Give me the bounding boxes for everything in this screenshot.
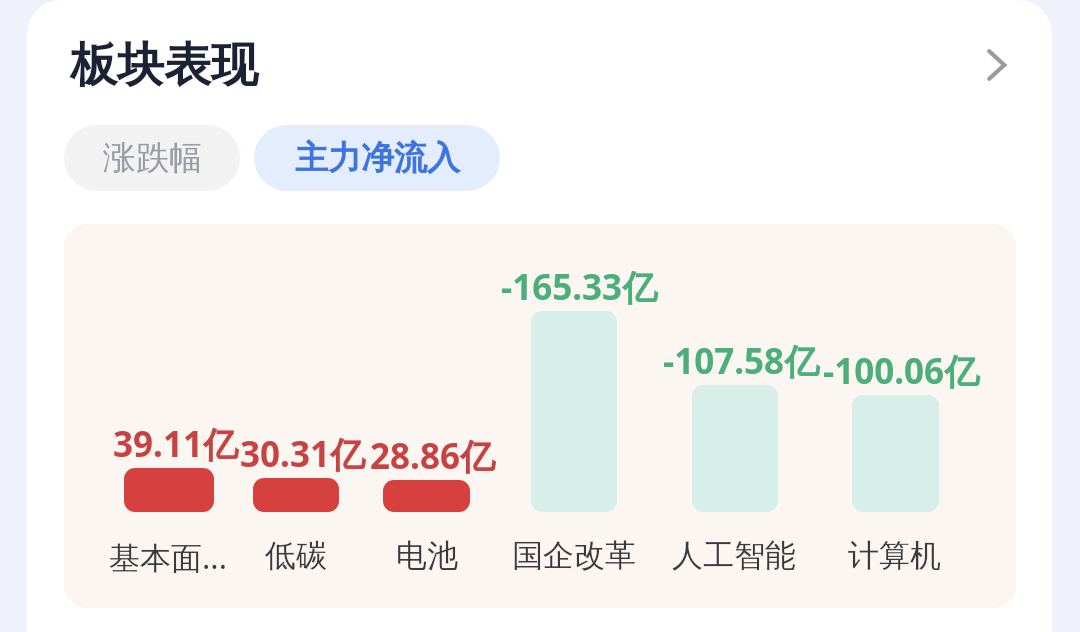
button[interactable]: 主力净流入 [254,125,500,191]
staticText: 人工智能 [672,536,796,575]
staticText: 基本面... [109,536,227,578]
button[interactable]: 涨跌幅 [64,125,240,191]
button[interactable] [253,478,339,512]
staticText: 计算机 [848,536,941,575]
staticText: 涨跌幅 [103,137,202,179]
staticText: -165.33亿 [501,263,658,311]
staticText: 低碳 [265,536,327,575]
staticText: 30.31亿 [240,430,365,478]
button[interactable] [852,395,939,512]
staticText: 电池 [396,536,458,575]
staticText: -107.58亿 [663,337,820,385]
button[interactable] [124,468,214,512]
staticText: 板块表现 [70,36,258,95]
staticText: -100.06亿 [823,347,980,395]
button[interactable] [383,480,470,512]
button[interactable] [692,385,778,512]
button[interactable]: 查看更多板块表现 [966,32,1032,98]
staticText: 39.11亿 [113,420,238,468]
button[interactable]: 板块表现 [70,36,258,95]
staticText: 主力净流入 [295,137,460,179]
staticText: 28.86亿 [370,432,495,480]
staticText: 国企改革 [512,536,636,575]
